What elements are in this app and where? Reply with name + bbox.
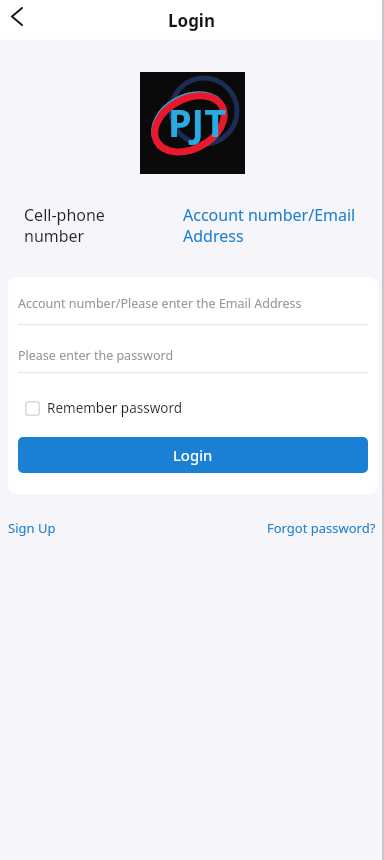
staticText: Remember password	[47, 399, 183, 417]
staticText: PJT	[168, 96, 227, 148]
staticText: Account number/Email Address	[183, 204, 356, 247]
staticText: Forgot password?	[267, 519, 376, 537]
staticText: Account number/Please enter the Email Ad…	[18, 295, 302, 312]
staticText: Login	[173, 445, 213, 465]
button[interactable]	[0, 0, 40, 40]
staticText: Sign Up	[8, 519, 56, 537]
button[interactable]: Account number/Email Address	[183, 204, 376, 247]
button[interactable]: Forgot password?	[267, 519, 376, 537]
button[interactable]: Cell-phone number	[24, 204, 183, 247]
button[interactable]: Login	[18, 437, 368, 473]
button[interactable]: Sign Up	[8, 519, 56, 537]
staticText: Login	[168, 9, 216, 32]
staticText: Cell-phone number	[24, 204, 105, 247]
staticText: Please enter the password	[18, 347, 174, 364]
button[interactable]: Remember password	[18, 399, 183, 417]
